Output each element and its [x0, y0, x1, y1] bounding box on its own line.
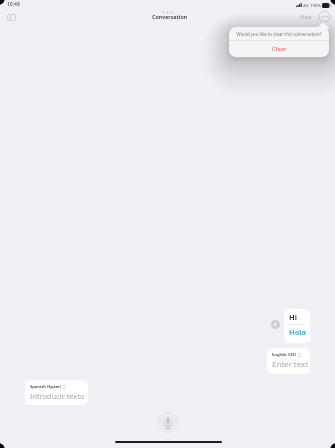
staticText: Hola — [289, 327, 306, 337]
button[interactable]: English (US) — [267, 348, 310, 374]
staticText: Introducir texto — [30, 391, 85, 401]
staticText: 4G — [303, 3, 309, 9]
button[interactable]: Record with microphone — [157, 412, 179, 434]
button[interactable]: View — [300, 13, 312, 20]
staticText: English (US) — [272, 352, 296, 358]
staticText: 100% — [310, 3, 321, 9]
button[interactable]: Clear — [229, 41, 329, 57]
staticText: Spanish (Spain) — [30, 384, 61, 390]
staticText: Enter text — [272, 359, 309, 370]
staticText: Clear — [272, 44, 287, 52]
button[interactable]: More options — [318, 10, 331, 23]
button[interactable]: Show sidebar — [4, 10, 19, 25]
staticText: Would you like to clear this conversatio… — [236, 31, 322, 37]
button[interactable]: Spanish (Spain) — [25, 380, 88, 405]
staticText: 10:49 — [7, 1, 20, 8]
button[interactable]: Hi — [284, 309, 310, 343]
staticText: Conversation — [152, 13, 188, 20]
button[interactable]: Play translation — [271, 320, 280, 329]
staticText: Hi — [289, 312, 297, 322]
